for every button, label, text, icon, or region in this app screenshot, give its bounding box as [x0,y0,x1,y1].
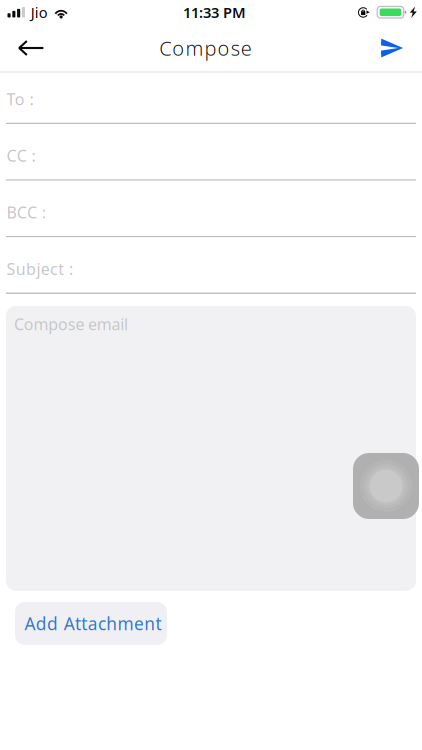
button[interactable]: AssistiveTouch [353,453,419,519]
staticText: Compose [159,35,252,61]
staticText: CC : [6,145,35,166]
staticText: Jio [31,2,48,22]
button[interactable]: Add Attachment [15,602,167,645]
staticText: BCC : [6,202,46,223]
staticText: Subject : [6,258,73,279]
staticText: Add Attachment [24,612,162,635]
staticText: 11:33 PM [183,2,246,22]
button[interactable]: Back [9,25,53,71]
staticText: Compose email [14,313,128,335]
button[interactable]: Send [370,25,414,71]
staticText: To : [6,88,33,110]
